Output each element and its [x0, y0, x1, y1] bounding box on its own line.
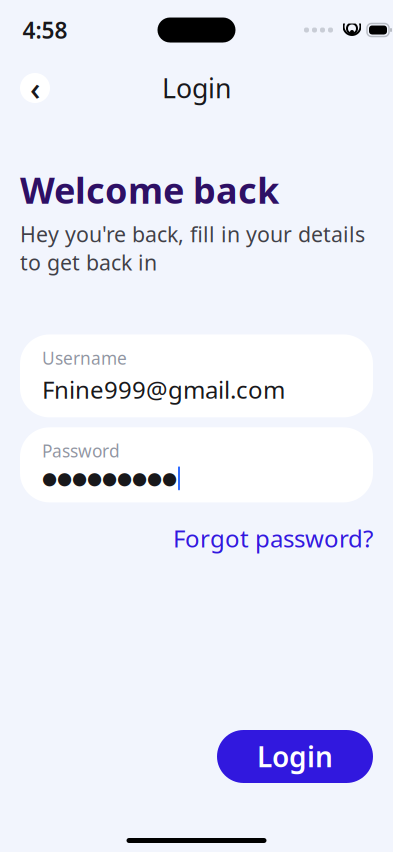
- staticText: Welcome back: [20, 166, 279, 214]
- staticText: Username: [42, 346, 127, 369]
- button[interactable]: Forgot password?: [173, 522, 373, 554]
- staticText: 4:58: [22, 15, 67, 45]
- staticText: Hey you're back, fill in your details to…: [20, 220, 365, 276]
- staticText: Password: [42, 439, 120, 462]
- staticText: ●●●●●●●●●: [42, 468, 177, 488]
- staticText: ‹: [30, 67, 40, 109]
- staticText: Login: [257, 738, 333, 775]
- button[interactable]: Back: [20, 73, 50, 103]
- button[interactable]: Login: [217, 730, 373, 783]
- staticText: Login: [162, 70, 231, 106]
- staticText: Fnine999@gmail.com: [42, 373, 285, 405]
- staticText: Forgot password?: [173, 522, 373, 554]
